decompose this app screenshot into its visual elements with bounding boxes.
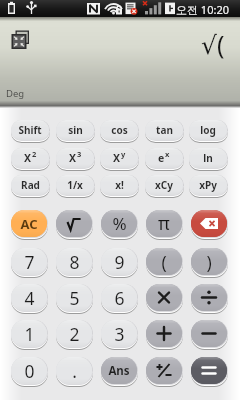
button[interactable]: 8 — [56, 248, 92, 275]
staticText: 9 — [114, 250, 125, 274]
button[interactable]: Delete — [191, 210, 227, 237]
button[interactable]: xPy — [189, 175, 227, 195]
staticText: xCy — [155, 178, 173, 192]
staticText: 1/x — [67, 178, 83, 192]
button[interactable]: 0 — [11, 357, 47, 384]
staticText: Ans — [108, 363, 130, 379]
button[interactable]: Equals — [191, 357, 227, 384]
button[interactable]: History — [10, 29, 30, 49]
staticText: 8 — [69, 250, 80, 274]
staticText: π — [158, 211, 170, 236]
staticText: 2 — [69, 322, 80, 346]
staticText: 6 — [114, 286, 125, 310]
staticText: e — [158, 151, 165, 165]
staticText: 2 — [32, 149, 37, 159]
staticText: 5 — [69, 286, 80, 310]
button[interactable]: ( — [146, 248, 182, 275]
button[interactable]: X — [56, 148, 94, 168]
staticText: % — [112, 212, 127, 235]
button[interactable]: tan — [145, 120, 183, 140]
button[interactable]: Minus — [191, 320, 227, 347]
staticText: AC — [20, 215, 38, 233]
staticText: y — [121, 149, 126, 159]
staticText: X — [113, 151, 121, 165]
button[interactable]: ) — [191, 248, 227, 275]
button[interactable]: x! — [100, 175, 138, 195]
button[interactable]: xCy — [145, 175, 183, 195]
button[interactable]: 9 — [101, 248, 137, 275]
staticText: 4 — [24, 286, 35, 310]
staticText: 3 — [77, 149, 82, 159]
button[interactable]: X — [11, 148, 49, 168]
staticText: tan — [156, 123, 173, 137]
button[interactable]: Ans — [101, 357, 137, 384]
button[interactable]: X — [100, 148, 138, 168]
button[interactable]: Shift — [11, 120, 49, 140]
button[interactable]: 4 — [11, 284, 47, 311]
button[interactable]: cos — [100, 120, 138, 140]
staticText: Shift — [18, 123, 42, 137]
button[interactable]: sin — [56, 120, 94, 140]
staticText: 1 — [24, 322, 35, 346]
staticText: ( — [161, 250, 167, 274]
button[interactable]: 2 — [56, 320, 92, 347]
staticText: . — [72, 359, 77, 383]
button[interactable]: 7 — [11, 248, 47, 275]
button[interactable]: π — [146, 210, 182, 237]
staticText: xPy — [199, 178, 217, 192]
staticText: x — [165, 149, 170, 159]
staticText: Deg — [6, 87, 25, 100]
staticText: ) — [206, 250, 212, 274]
staticText: Rad — [21, 178, 40, 192]
staticText: 7 — [24, 250, 35, 274]
button[interactable]: e — [145, 148, 183, 168]
staticText: √( — [201, 27, 225, 61]
button[interactable]: AC — [11, 210, 47, 237]
button[interactable]: 5 — [56, 284, 92, 311]
button[interactable]: Multiply — [146, 284, 182, 311]
button[interactable]: Rad — [11, 175, 49, 195]
staticText: 0 — [24, 359, 35, 383]
staticText: sin — [68, 123, 83, 137]
staticText: ln — [203, 151, 213, 165]
button[interactable]: Plus — [146, 320, 182, 347]
button[interactable]: 3 — [101, 320, 137, 347]
staticText: x! — [115, 178, 124, 192]
button[interactable]: . — [56, 357, 92, 384]
button[interactable]: 6 — [101, 284, 137, 311]
button[interactable]: 1/x — [56, 175, 94, 195]
staticText: 3 — [114, 322, 125, 346]
staticText: 오전 10:20 — [176, 2, 229, 17]
button[interactable]: % — [101, 210, 137, 237]
button[interactable]: 1 — [11, 320, 47, 347]
staticText: cos — [111, 123, 128, 137]
button[interactable]: Square root — [56, 210, 92, 237]
staticText: X — [69, 151, 77, 165]
button[interactable]: Divide — [191, 284, 227, 311]
staticText: X — [24, 151, 32, 165]
button[interactable]: Plus minus — [146, 357, 182, 384]
button[interactable]: ln — [189, 148, 227, 168]
button[interactable]: log — [189, 120, 227, 140]
staticText: log — [200, 123, 216, 137]
